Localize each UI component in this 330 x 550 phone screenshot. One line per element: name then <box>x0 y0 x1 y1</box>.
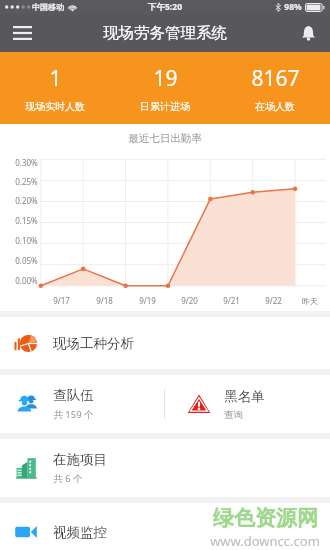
staticText: 现场工种分析 <box>53 335 134 352</box>
staticText: 0.25% <box>15 176 38 187</box>
staticText: www.downcc.com <box>210 532 320 550</box>
staticText: 0.15% <box>15 215 38 226</box>
staticText: 日累计进场 <box>140 100 190 113</box>
button[interactable]: Menu <box>0 14 44 52</box>
staticText: 9/20 <box>181 295 198 306</box>
staticText: 在场人数 <box>255 100 295 113</box>
staticText: 绿色资源网 <box>213 505 318 531</box>
staticText: 0.00% <box>15 275 38 286</box>
button[interactable]: 1 <box>0 52 110 124</box>
staticText: 昨天 <box>302 296 318 306</box>
button[interactable]: 在施项目 <box>0 439 330 497</box>
staticText: 9/22 <box>265 295 282 306</box>
staticText: 1 <box>49 64 62 93</box>
staticText: 现场劳务管理系统 <box>103 23 227 43</box>
staticText: 中国移动 <box>32 2 64 12</box>
staticText: 黑名单 <box>224 388 265 405</box>
button[interactable]: 19 <box>110 52 220 124</box>
staticText: 9/19 <box>139 295 156 306</box>
button[interactable]: 8167 <box>220 52 330 124</box>
staticText: 在施项目 <box>53 451 107 468</box>
staticText: 19 <box>153 64 178 93</box>
staticText: 9/21 <box>223 295 240 306</box>
staticText: 查队伍 <box>53 387 94 404</box>
staticText: 8167 <box>251 64 300 93</box>
staticText: 98% <box>284 1 302 13</box>
staticText: 现场实时人数 <box>25 100 85 113</box>
staticText: 9/18 <box>96 295 113 306</box>
button[interactable]: Notifications <box>286 14 330 52</box>
button[interactable]: 现场工种分析 <box>0 317 330 369</box>
staticText: 0.05% <box>15 255 38 266</box>
staticText: 0.20% <box>15 195 38 206</box>
staticText: 9/17 <box>53 295 70 306</box>
button[interactable]: 查队伍 <box>0 375 164 433</box>
button[interactable]: 视频监控 <box>0 514 330 550</box>
staticText: 最近七日出勤率 <box>128 132 202 145</box>
staticText: 查询 <box>224 409 243 421</box>
staticText: 共 159 个 <box>53 408 94 421</box>
staticText: 共 6 个 <box>53 472 83 485</box>
button[interactable]: 黑名单 <box>165 375 330 433</box>
staticText: 0.10% <box>15 235 38 246</box>
staticText: 视频监控 <box>53 524 107 541</box>
staticText: 下午5:20 <box>148 1 182 13</box>
staticText: 0.30% <box>15 157 38 168</box>
